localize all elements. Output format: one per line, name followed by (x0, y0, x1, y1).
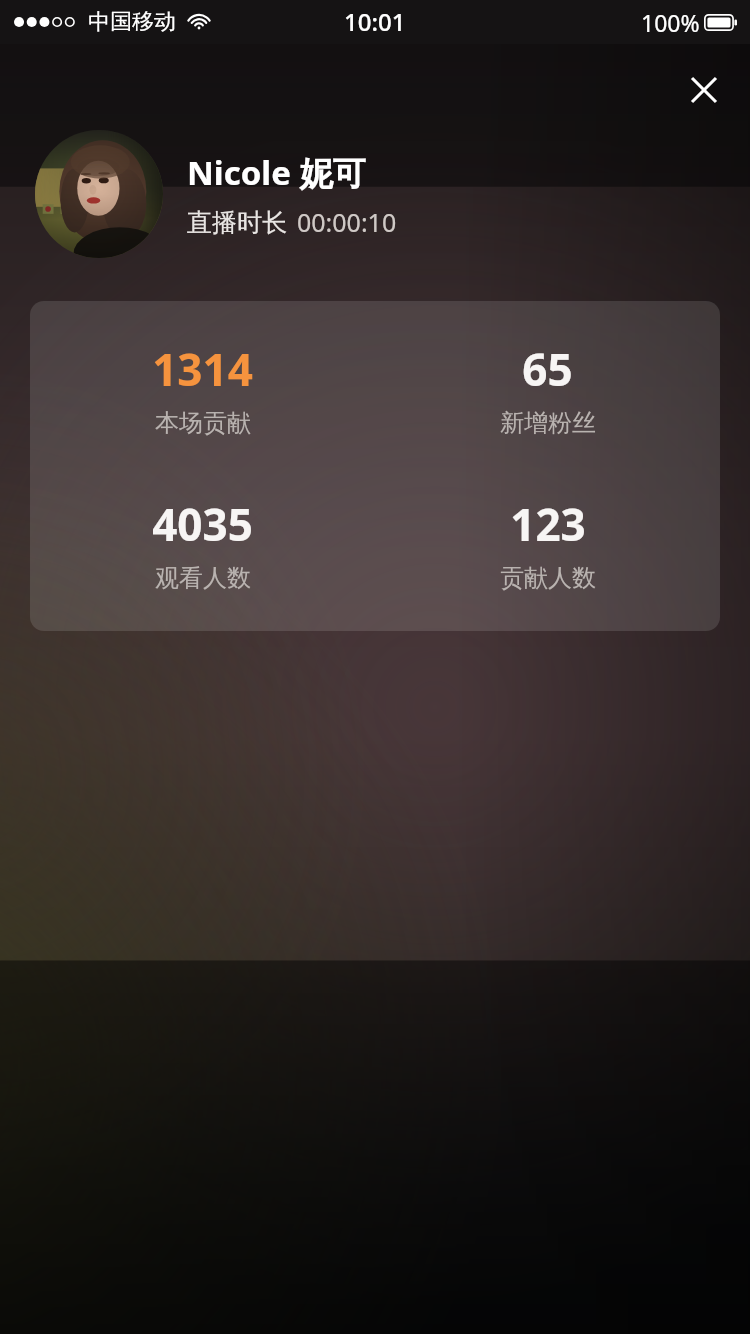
staticText: 4035 (152, 494, 253, 554)
staticText: 观看人数 (155, 563, 251, 593)
staticText: 本场贡献 (155, 408, 251, 438)
staticText: 123 (510, 494, 586, 554)
staticText: 100% (641, 7, 700, 38)
button[interactable]: 65 (375, 339, 720, 438)
button[interactable]: 123 (375, 494, 720, 593)
staticText: 直播时长 (187, 207, 287, 238)
staticText: 中国移动 (88, 8, 176, 36)
staticText: 10:01 (344, 5, 406, 38)
button[interactable]: 4035 (30, 494, 375, 593)
staticText: 00:00:10 (297, 205, 397, 239)
button[interactable]: Close (672, 58, 736, 122)
staticText: 1314 (152, 339, 253, 399)
staticText: Nicole 妮可 (187, 150, 366, 195)
staticText: 贡献人数 (500, 563, 596, 593)
button[interactable]: Nicole 妮可 (35, 130, 750, 258)
staticText: 新增粉丝 (500, 408, 596, 438)
staticText: 65 (522, 339, 573, 399)
button[interactable]: 1314 (30, 339, 375, 438)
